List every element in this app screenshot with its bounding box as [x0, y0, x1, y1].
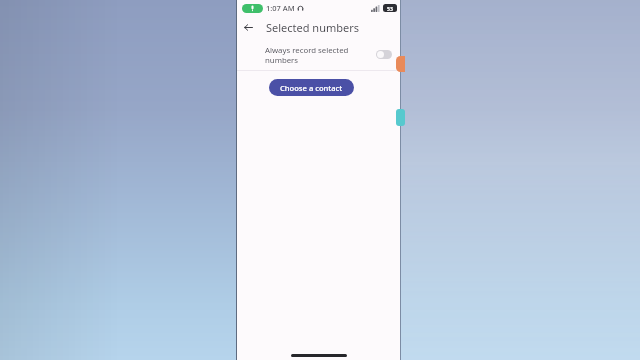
staticText: Selected numbers: [266, 20, 360, 35]
button[interactable]: Back: [237, 16, 259, 38]
button[interactable]: Always record selected numbers: [237, 39, 401, 70]
staticText: 1:07 AM: [266, 3, 295, 13]
staticText: Choose a contact: [280, 83, 343, 93]
staticText: Always record selected numbers: [265, 45, 370, 65]
button[interactable]: Choose a contact: [269, 79, 354, 96]
staticText: 53: [387, 5, 393, 12]
